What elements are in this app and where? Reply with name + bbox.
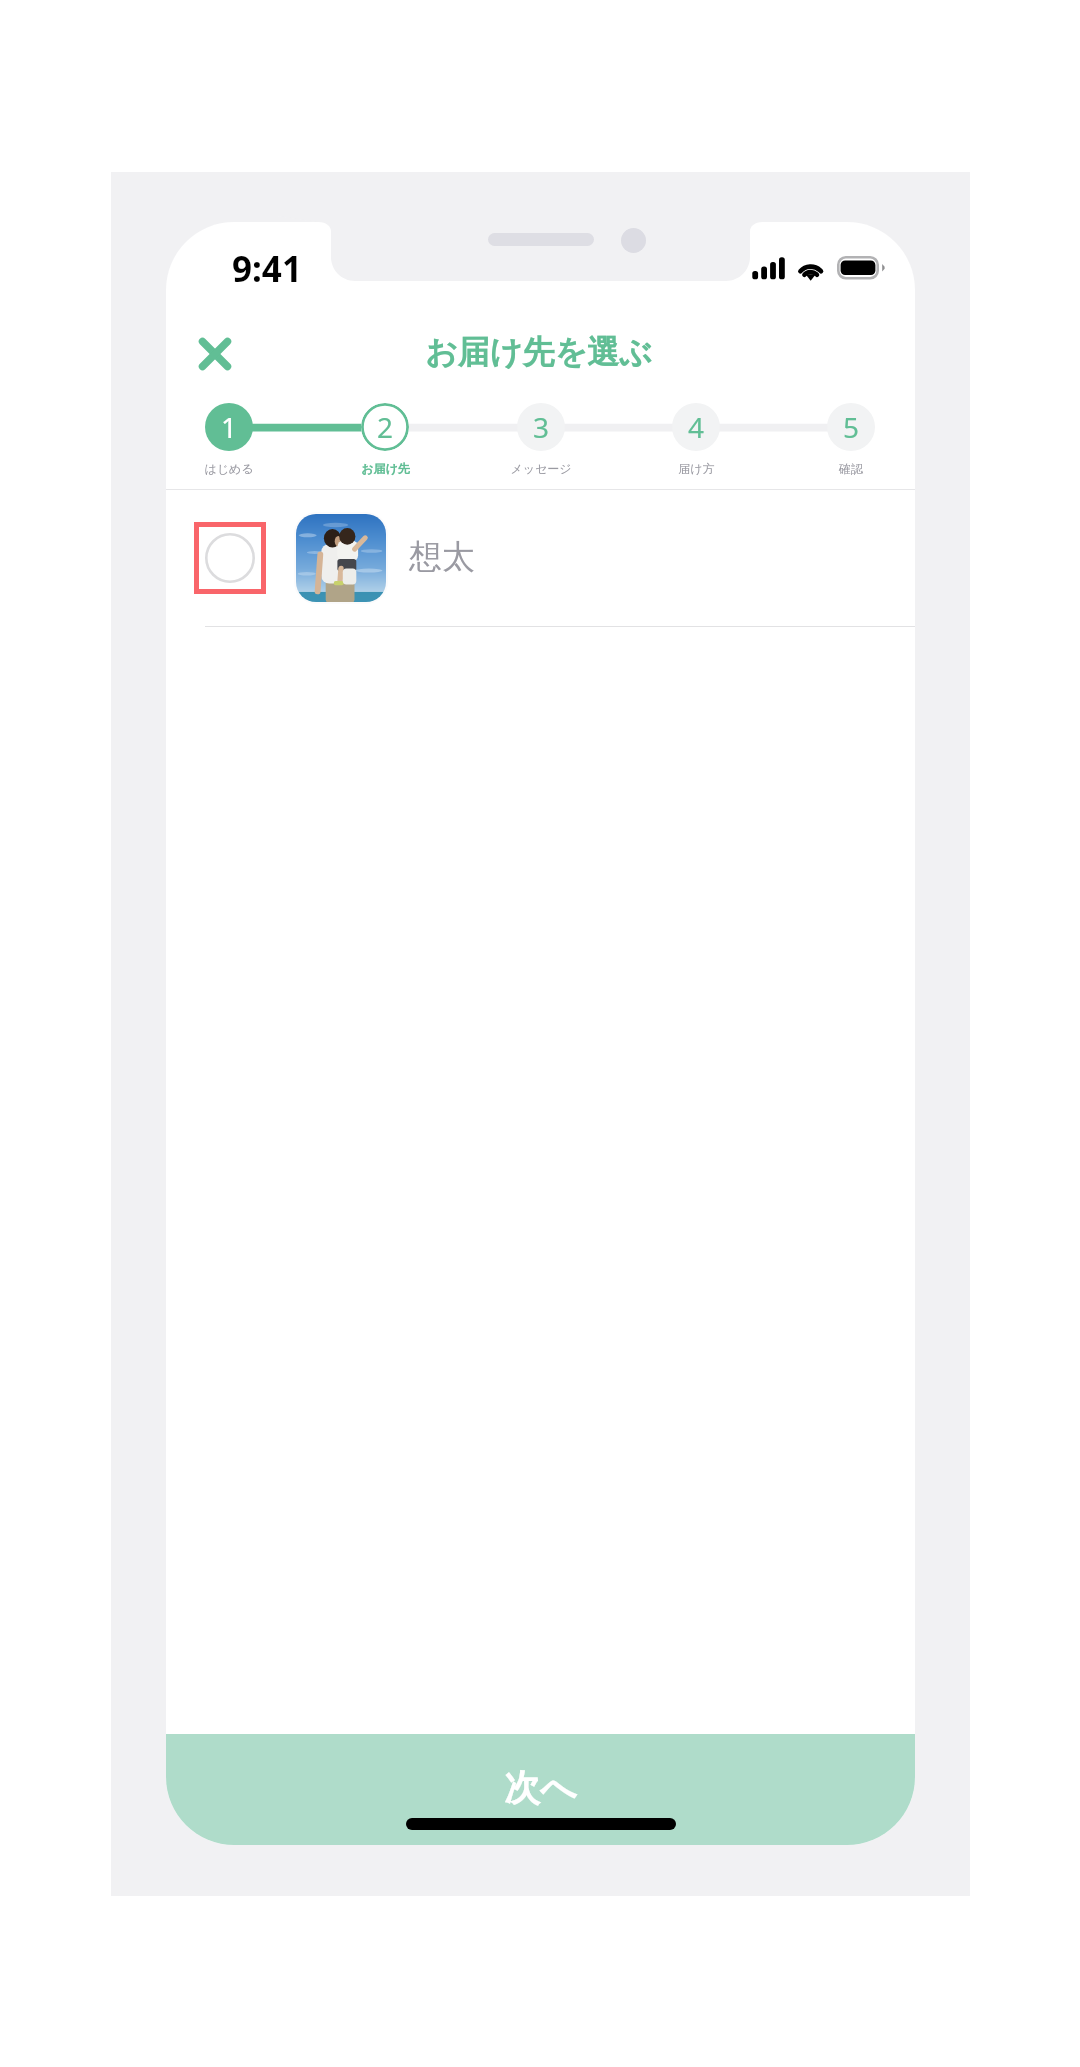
- staticText: 4: [688, 408, 705, 446]
- button[interactable]: Select recipient: [194, 522, 266, 594]
- staticText: 5: [843, 408, 860, 446]
- staticText: 9:41: [232, 245, 302, 293]
- staticText: 届け方: [678, 461, 715, 476]
- staticText: お届け先: [361, 461, 410, 476]
- button[interactable]: 4: [640, 399, 752, 476]
- staticText: 2: [377, 408, 394, 446]
- staticText: はじめる: [204, 461, 254, 476]
- button[interactable]: 2: [329, 399, 441, 476]
- button[interactable]: 次へ: [166, 1734, 915, 1845]
- button[interactable]: 5: [795, 399, 907, 476]
- staticText: お届け先を選ぶ: [425, 332, 652, 372]
- button[interactable]: Close: [180, 319, 250, 389]
- button[interactable]: 1: [173, 399, 285, 476]
- button[interactable]: 3: [485, 399, 597, 476]
- button[interactable]: Select recipient: [166, 490, 915, 627]
- staticText: 想太: [409, 536, 475, 578]
- staticText: 3: [533, 408, 550, 446]
- staticText: 1: [221, 408, 238, 446]
- staticText: メッセージ: [510, 461, 572, 476]
- staticText: 確認: [839, 461, 863, 476]
- staticText: 次へ: [504, 1765, 577, 1810]
